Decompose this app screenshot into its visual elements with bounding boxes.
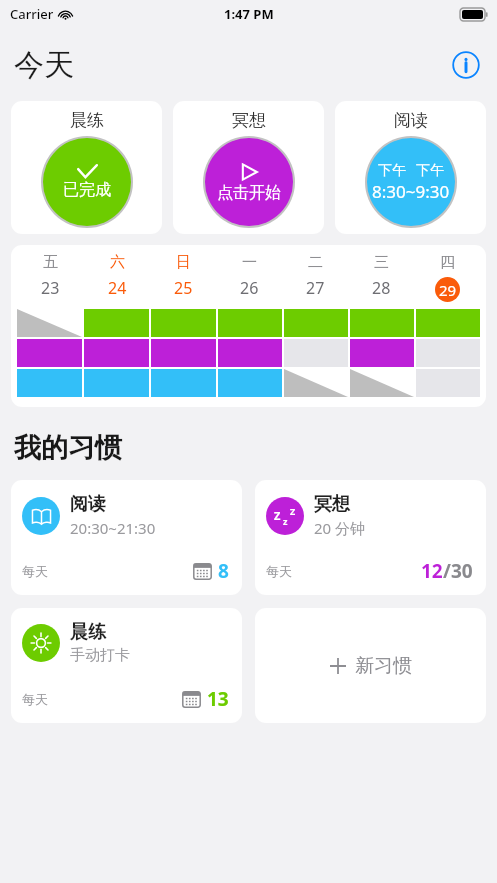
- staticText: 29: [439, 280, 457, 300]
- staticText: 28: [372, 277, 391, 299]
- staticText: 24: [108, 277, 127, 299]
- staticText: 26: [240, 277, 259, 299]
- staticText: 每天: [22, 563, 48, 579]
- staticText: 六: [110, 253, 125, 272]
- staticText: 我的习惯: [14, 431, 122, 465]
- staticText: 日: [176, 253, 191, 272]
- staticText: 8:30~9:30: [372, 180, 450, 203]
- staticText: 13: [207, 686, 229, 712]
- staticText: 冥想: [232, 110, 266, 131]
- staticText: 20 分钟: [314, 518, 366, 538]
- staticText: 8: [218, 558, 229, 584]
- staticText: 27: [306, 277, 325, 299]
- staticText: 冥想: [314, 493, 350, 516]
- button[interactable]: 阅读: [11, 480, 242, 595]
- staticText: z: [283, 515, 288, 527]
- staticText: 1:47 PM: [224, 5, 274, 23]
- staticText: Z: [290, 505, 296, 517]
- staticText: Carrier: [10, 5, 54, 23]
- button[interactable]: 新习惯: [255, 608, 486, 723]
- button[interactable]: Info: [452, 51, 480, 79]
- staticText: 晨练: [70, 110, 104, 131]
- button[interactable]: Z: [255, 480, 486, 595]
- staticText: 已完成: [63, 180, 111, 200]
- staticText: 每天: [22, 691, 48, 707]
- staticText: 每天: [266, 563, 292, 579]
- staticText: 三: [374, 253, 389, 272]
- button[interactable]: 阅读: [335, 101, 486, 234]
- staticText: 阅读: [70, 493, 106, 516]
- staticText: 下午: [416, 162, 444, 180]
- staticText: 手动打卡: [70, 646, 130, 665]
- staticText: 晨练: [70, 621, 106, 644]
- staticText: 今天: [14, 46, 74, 84]
- staticText: 二: [308, 253, 323, 272]
- button[interactable]: 晨练: [11, 101, 162, 234]
- button[interactable]: 晨练: [11, 608, 242, 723]
- staticText: 四: [440, 253, 455, 272]
- staticText: 20:30~21:30: [70, 518, 156, 538]
- staticText: 23: [41, 277, 60, 299]
- staticText: 五: [43, 253, 58, 272]
- staticText: 25: [174, 277, 193, 299]
- staticText: Z: [274, 508, 281, 523]
- staticText: 一: [242, 253, 257, 272]
- staticText: /30: [443, 558, 473, 584]
- staticText: 下午: [378, 162, 406, 180]
- staticText: 12: [421, 558, 443, 584]
- button[interactable]: 冥想: [173, 101, 324, 234]
- staticText: 点击开始: [217, 183, 281, 203]
- staticText: 阅读: [394, 110, 428, 131]
- staticText: 新习惯: [355, 654, 412, 678]
